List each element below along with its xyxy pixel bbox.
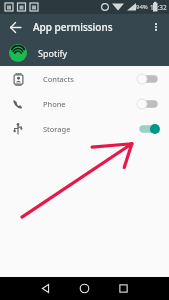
button[interactable]: Off — [137, 97, 160, 111]
button[interactable]: Off — [137, 72, 160, 86]
button[interactable]: Phone — [0, 91, 169, 116]
staticText: Spotify — [38, 47, 68, 59]
button[interactable]: Spotify — [0, 40, 169, 66]
button[interactable]: Storage — [0, 116, 169, 141]
button[interactable]: On — [137, 122, 160, 136]
staticText: 19:32 — [150, 3, 167, 12]
staticText: 94% — [136, 3, 148, 11]
button[interactable]: Home — [65, 277, 104, 300]
button[interactable]: More options — [146, 17, 166, 37]
staticText: Contacts — [43, 74, 137, 84]
button[interactable]: Recent apps — [104, 277, 143, 300]
button[interactable]: Back — [26, 277, 65, 300]
staticText: Storage — [43, 124, 137, 134]
staticText: App permissions — [33, 20, 113, 34]
button[interactable]: Back — [5, 17, 25, 37]
button[interactable]: Contacts — [0, 66, 169, 91]
staticText: Phone — [43, 99, 137, 109]
